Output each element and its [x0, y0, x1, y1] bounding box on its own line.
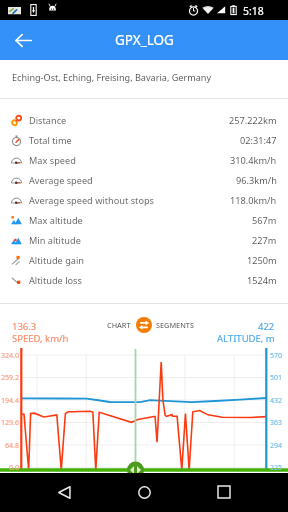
staticText: 1524m	[247, 274, 277, 287]
staticText: Average speed	[29, 174, 236, 187]
staticText: Altitude gain	[29, 254, 247, 267]
button[interactable]: Max altitude	[0, 210, 288, 230]
staticText: Altitude loss	[29, 274, 247, 287]
button[interactable]: Min altitude	[0, 230, 288, 250]
staticText: 5:18	[243, 4, 264, 18]
staticText: 501	[270, 373, 283, 383]
staticText: 64.8	[5, 441, 19, 451]
staticText: Average speed without stops	[29, 194, 230, 207]
staticText: 0.0	[9, 463, 19, 473]
staticText: 310.4km/h	[230, 154, 277, 167]
button[interactable]: Max speed	[0, 150, 288, 170]
staticText: 02:31:47	[240, 134, 277, 147]
staticText: SEGMENTS	[156, 320, 194, 330]
button[interactable]: Average speed without stops	[0, 190, 288, 210]
button[interactable]: Average speed	[0, 170, 288, 190]
staticText: 363	[270, 418, 283, 428]
staticText: 422	[258, 320, 275, 333]
staticText: Eching-Ost, Eching, Freising, Bavaria, G…	[12, 71, 212, 83]
staticText: Min altitude	[29, 234, 252, 247]
staticText: ALTITUDE, m	[217, 332, 275, 345]
staticText: 136.3	[12, 320, 37, 333]
staticText: 129.6	[1, 418, 19, 428]
staticText: 1250m	[247, 254, 277, 267]
staticText: 225	[270, 463, 283, 473]
staticText: 567m	[252, 214, 277, 227]
staticText: 257.222km	[229, 114, 277, 127]
button[interactable]: CHART	[107, 317, 194, 333]
button[interactable]: Altitude gain	[0, 250, 288, 270]
button[interactable]: Altitude loss	[0, 270, 288, 290]
staticText: SPEED, km/h	[12, 332, 69, 345]
button[interactable]: Recents	[207, 475, 241, 509]
staticText: 227m	[252, 234, 277, 247]
staticText: CHART	[107, 320, 131, 330]
button[interactable]: Back	[3, 20, 43, 60]
staticText: Max altitude	[29, 214, 252, 227]
staticText: 432	[270, 396, 283, 406]
staticText: 259.2	[1, 373, 19, 383]
staticText: Total time	[29, 134, 240, 147]
staticText: 118.0km/h	[230, 194, 277, 207]
staticText: 324.0	[1, 351, 19, 361]
button[interactable]: Total time	[0, 130, 288, 150]
staticText: Max speed	[29, 154, 230, 167]
staticText: GPX_LOG	[115, 31, 174, 49]
button[interactable]: Distance	[0, 110, 288, 130]
staticText: 96.3km/h	[236, 174, 277, 187]
button[interactable]: Home	[127, 475, 161, 509]
staticText: Distance	[29, 114, 229, 127]
staticText: 294	[270, 441, 283, 451]
staticText: 194.4	[1, 396, 19, 406]
button[interactable]: Back	[47, 475, 81, 509]
staticText: 570	[270, 351, 283, 361]
